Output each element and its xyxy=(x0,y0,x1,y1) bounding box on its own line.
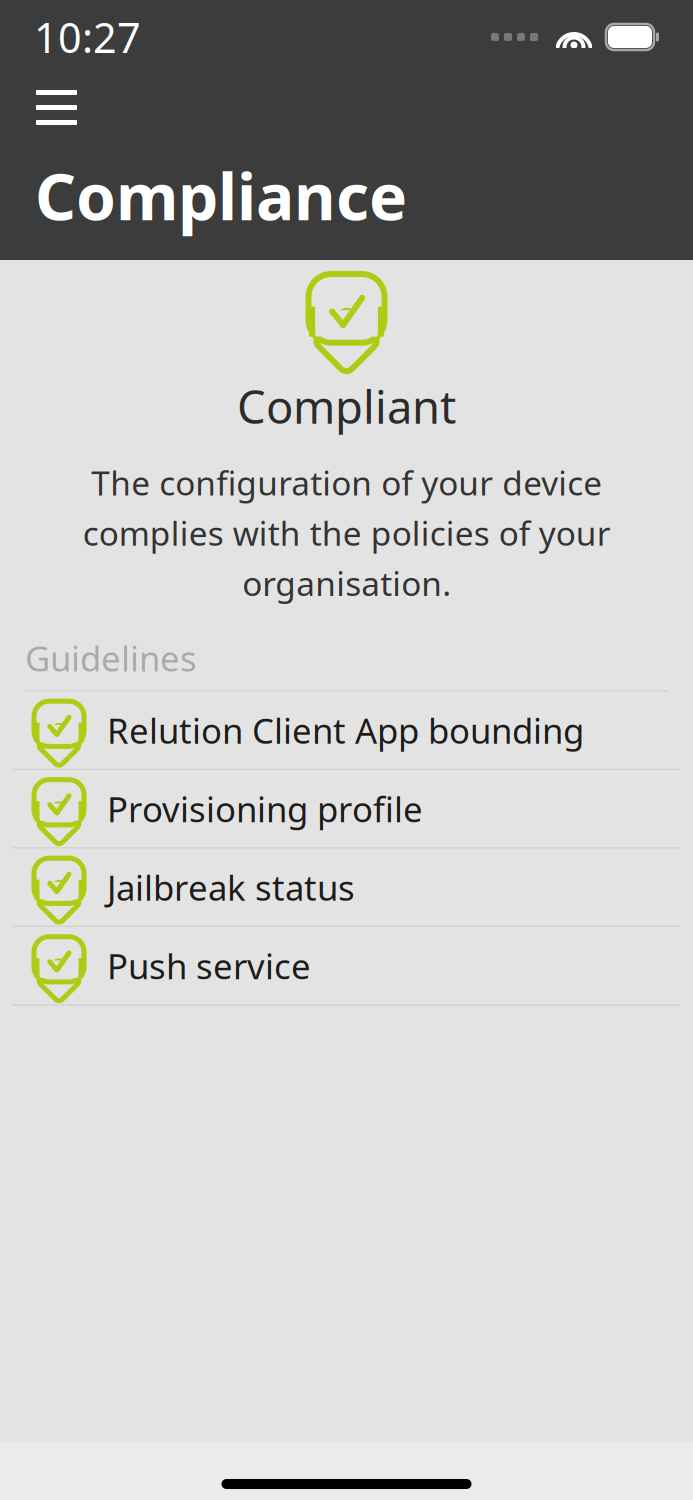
button[interactable]: Jailbreak status xyxy=(0,849,693,927)
staticText: Push service xyxy=(107,943,311,989)
button[interactable]: Menu xyxy=(0,74,113,141)
button[interactable]: Push service xyxy=(0,927,693,1006)
staticText: The configuration of your device complie… xyxy=(82,460,610,605)
staticText: Guidelines xyxy=(25,635,197,681)
staticText: 10:27 xyxy=(34,10,141,64)
staticText: Compliance xyxy=(35,153,407,238)
button[interactable]: Provisioning profile xyxy=(0,770,693,849)
staticText: Compliant xyxy=(237,376,456,436)
staticText: Jailbreak status xyxy=(107,864,355,910)
button[interactable]: Relution Client App bounding xyxy=(0,692,693,770)
staticText: Provisioning profile xyxy=(107,786,423,832)
staticText: Relution Client App bounding xyxy=(107,707,584,753)
